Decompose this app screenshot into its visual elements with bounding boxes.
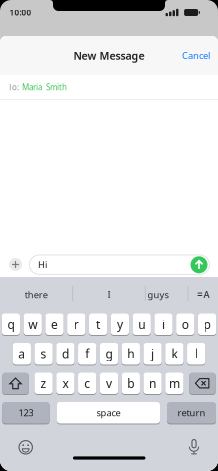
staticText: return (177, 407, 205, 419)
button[interactable]: a (13, 343, 31, 364)
staticText: space (96, 407, 120, 419)
button[interactable] (9, 258, 22, 271)
button[interactable]: l (187, 343, 205, 364)
staticText: s (41, 346, 47, 362)
staticText: r (74, 316, 79, 332)
button[interactable]: Maria Smith (22, 82, 67, 92)
staticText: m (169, 375, 180, 391)
button[interactable]: o (176, 313, 194, 335)
button[interactable]: I (74, 282, 144, 308)
button[interactable]: A (198, 288, 209, 300)
button[interactable]: f (78, 343, 96, 364)
staticText: u (138, 316, 145, 332)
staticText: k (171, 346, 177, 362)
staticText: guys (147, 288, 168, 301)
staticText: c (84, 375, 90, 391)
staticText: v (106, 375, 112, 391)
button[interactable]: Hi (29, 254, 210, 275)
staticText: l (195, 346, 198, 362)
button[interactable]: z (34, 372, 53, 394)
button[interactable]: Cancel (182, 49, 210, 62)
button[interactable]: x (56, 372, 75, 394)
button[interactable]: i (154, 313, 173, 335)
staticText: To: (8, 82, 19, 92)
staticText: z (41, 375, 47, 391)
staticText: e (51, 316, 58, 332)
button[interactable]: w (24, 313, 42, 335)
staticText: there (25, 288, 48, 301)
button[interactable]: guys (138, 282, 178, 308)
button[interactable]: return (167, 402, 216, 423)
staticText: Maria Smith (22, 82, 67, 92)
button[interactable]: u (133, 313, 151, 335)
button[interactable]: q (2, 313, 20, 335)
button[interactable]: k (165, 343, 183, 364)
staticText: g (105, 346, 112, 362)
button[interactable]: m (165, 372, 183, 394)
staticText: i (162, 316, 165, 332)
button[interactable] (189, 372, 216, 394)
staticText: 10:00 (9, 7, 31, 18)
staticText: 123 (18, 407, 33, 419)
staticText: n (149, 375, 156, 391)
button[interactable]: there (1, 282, 71, 308)
button[interactable]: d (56, 343, 75, 364)
button[interactable]: v (100, 372, 118, 394)
staticText: I (107, 288, 110, 301)
button[interactable]: space (57, 402, 160, 423)
staticText: t (96, 316, 100, 332)
button[interactable]: c (78, 372, 96, 394)
button[interactable] (187, 438, 201, 454)
button[interactable]: b (122, 372, 140, 394)
button[interactable]: h (122, 343, 140, 364)
staticText: New Message (73, 48, 144, 63)
staticText: a (18, 346, 25, 362)
staticText: w (28, 316, 37, 332)
button[interactable] (2, 372, 29, 394)
staticText: A (203, 288, 209, 300)
button[interactable] (18, 440, 33, 455)
staticText: o (182, 316, 189, 332)
staticText: f (85, 346, 89, 362)
staticText: q (7, 316, 14, 332)
staticText: j (151, 346, 154, 362)
button[interactable]: t (89, 313, 107, 335)
staticText: p (204, 316, 211, 332)
button[interactable]: 123 (2, 402, 50, 423)
staticText: x (62, 375, 68, 391)
button[interactable] (190, 256, 207, 273)
staticText: y (117, 316, 123, 332)
button[interactable]: e (45, 313, 64, 335)
button[interactable]: r (67, 313, 85, 335)
button[interactable]: n (143, 372, 162, 394)
staticText: b (127, 375, 134, 391)
staticText: Hi (38, 258, 47, 271)
staticText: d (62, 346, 69, 362)
staticText: h (127, 346, 134, 362)
button[interactable]: p (198, 313, 216, 335)
staticText: Cancel (182, 49, 210, 62)
button[interactable]: s (34, 343, 53, 364)
button[interactable]: g (100, 343, 118, 364)
button[interactable]: y (111, 313, 129, 335)
button[interactable]: j (143, 343, 162, 364)
